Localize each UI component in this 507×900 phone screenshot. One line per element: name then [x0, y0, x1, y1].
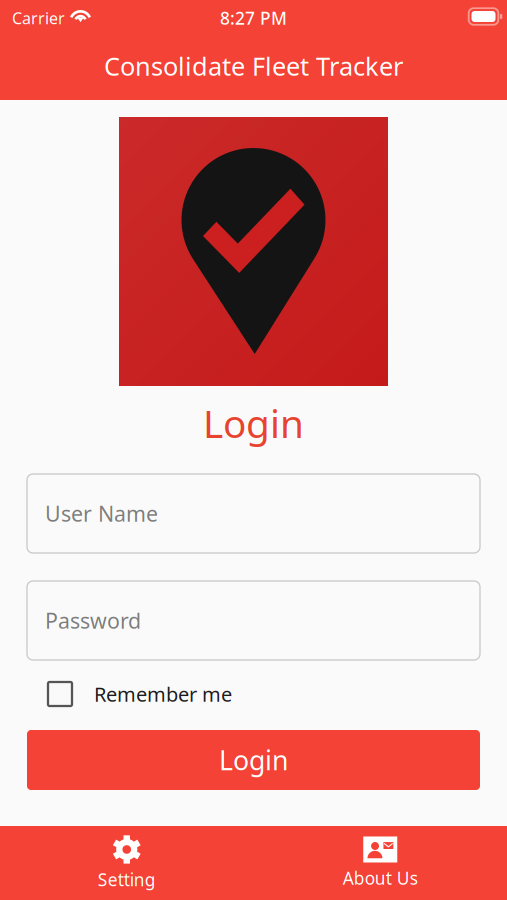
- staticText: Remember me: [94, 681, 232, 707]
- staticText: Login: [219, 742, 288, 778]
- staticText: About Us: [343, 866, 418, 889]
- button[interactable]: About Us: [253, 826, 507, 900]
- staticText: Carrier: [12, 7, 65, 29]
- staticText: User Name: [45, 499, 158, 528]
- staticText: Login: [203, 397, 304, 449]
- staticText: Consolidate Fleet Tracker: [104, 49, 403, 83]
- staticText: Setting: [98, 868, 156, 891]
- staticText: Password: [45, 606, 141, 635]
- button[interactable]: Login: [27, 730, 480, 790]
- button[interactable]: Setting: [0, 826, 253, 900]
- staticText: 8:27 PM: [220, 6, 287, 29]
